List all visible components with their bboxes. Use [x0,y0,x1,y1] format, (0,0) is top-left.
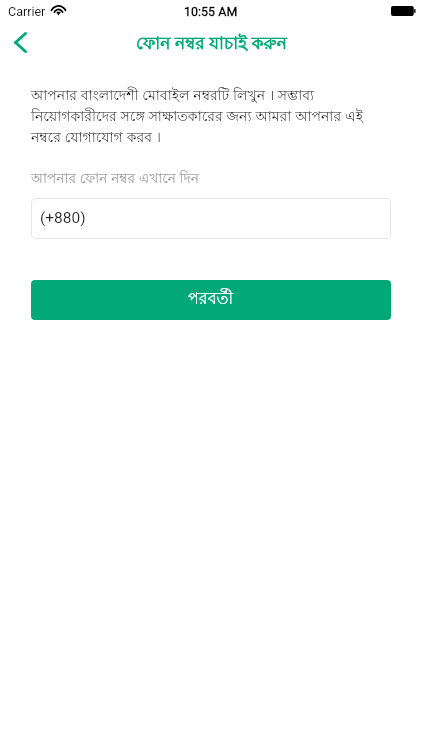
staticText: আপনার ফোন নম্বর এখানে দিন [31,172,199,189]
button[interactable]: (+880) [31,198,391,239]
staticText: আপনার বাংলাদেশী মোবাইল নম্বরটি লিখুন । স… [31,86,392,149]
staticText: পরবর্তী [188,292,234,310]
staticText: (+880) [40,209,86,227]
staticText: Carrier [8,4,46,19]
button[interactable]: Back [0,22,40,62]
staticText: 10:55 AM [184,4,238,19]
staticText: ফোন নম্বর যাচাই করুন [136,37,287,55]
button[interactable]: পরবর্তী [31,280,391,320]
